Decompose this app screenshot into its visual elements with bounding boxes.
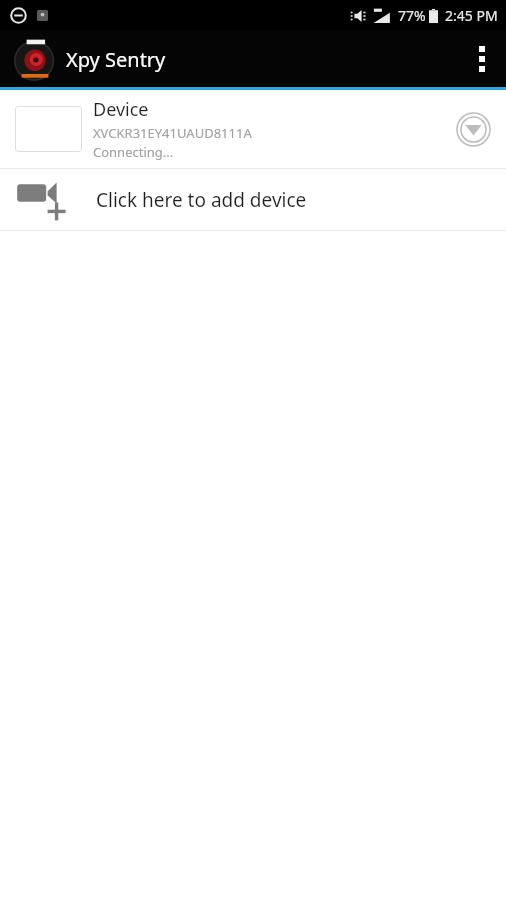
staticText: 77% (398, 6, 426, 25)
button[interactable]: Click here to add device (0, 169, 506, 230)
staticText: XVCKR31EY41UAUD8111A (93, 124, 252, 142)
staticText: Connecting... (93, 143, 174, 161)
staticText: Xpy Sentry (66, 46, 166, 73)
button[interactable]: Expand device (449, 105, 497, 153)
staticText: Click here to add device (96, 187, 307, 213)
button[interactable]: Device (0, 90, 506, 168)
button[interactable]: More options (458, 35, 506, 83)
staticText: Device (93, 97, 149, 122)
staticText: 2:45 PM (445, 6, 498, 25)
